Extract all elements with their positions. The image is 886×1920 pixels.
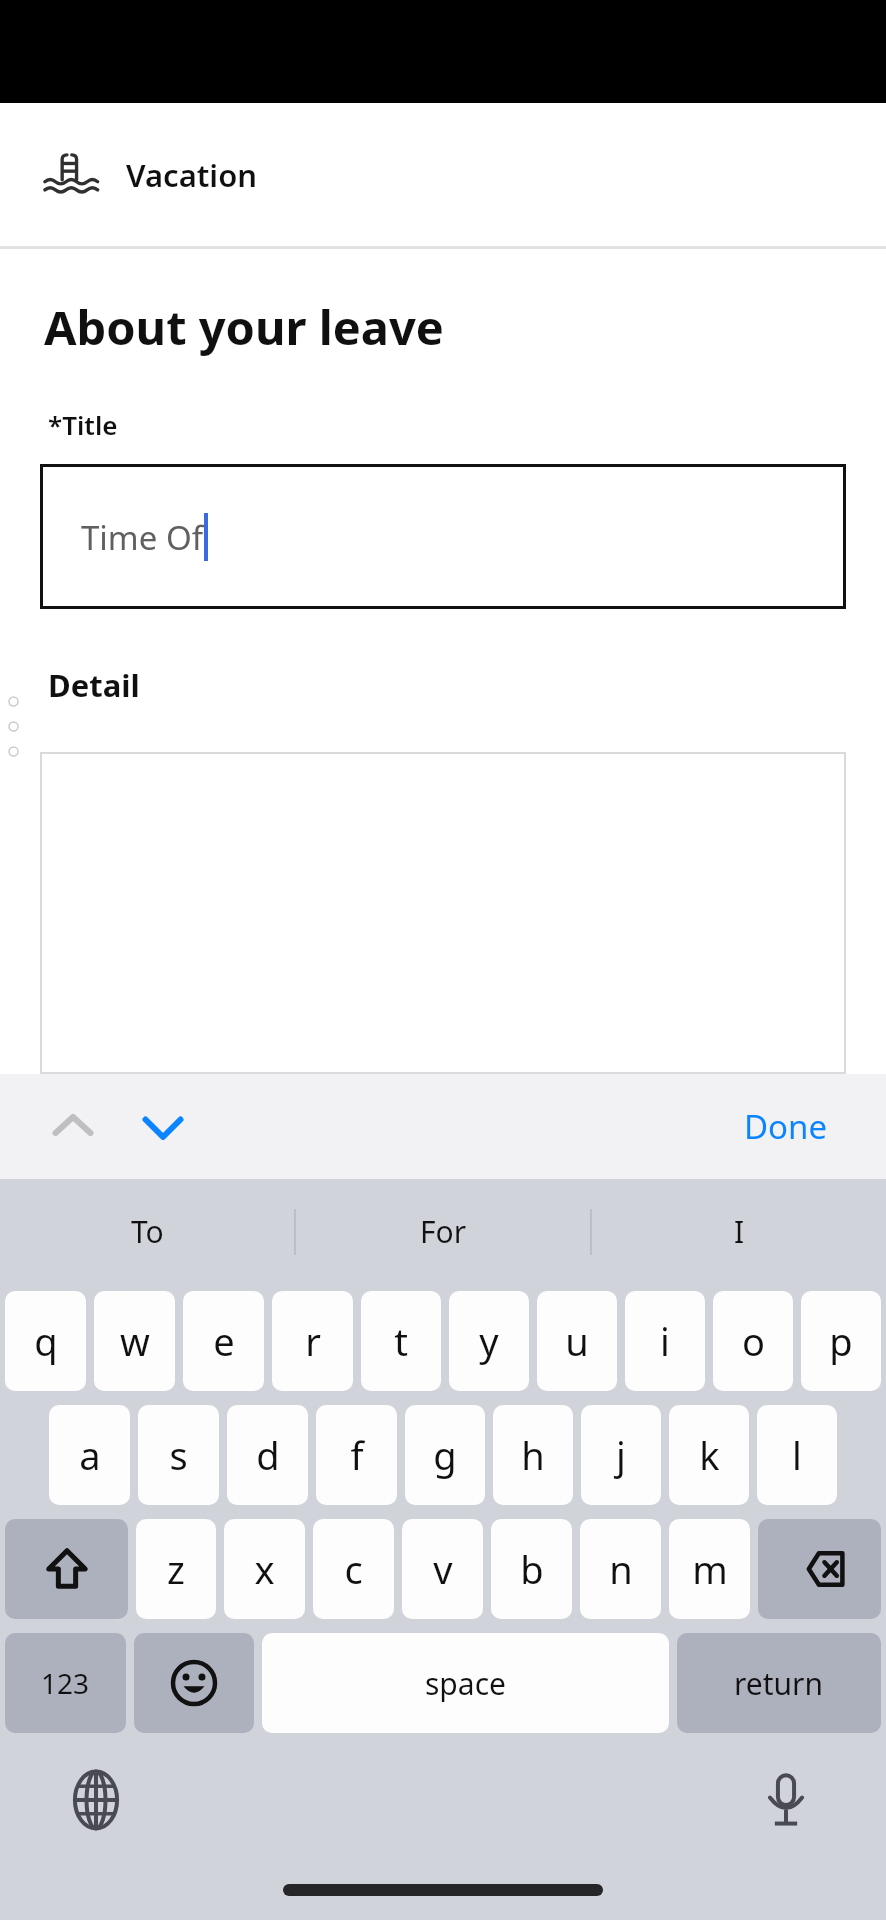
button[interactable]: Next field [130, 1094, 196, 1160]
button[interactable]: m [669, 1519, 750, 1619]
button[interactable]: w [94, 1291, 175, 1391]
button[interactable]: o [713, 1291, 793, 1391]
staticText: Time Of [81, 515, 204, 560]
staticText: a [79, 1429, 101, 1481]
staticText: z [167, 1543, 185, 1595]
staticText: d [256, 1429, 280, 1481]
staticText: h [521, 1429, 545, 1481]
button[interactable]: i [625, 1291, 705, 1391]
staticText: o [742, 1315, 765, 1367]
button[interactable]: u [537, 1291, 617, 1391]
staticText: 123 [41, 1664, 90, 1702]
button[interactable]: Backspace [758, 1519, 881, 1619]
button[interactable]: y [449, 1291, 529, 1391]
button[interactable]: c [313, 1519, 394, 1619]
button[interactable]: Dictate [748, 1762, 824, 1838]
button[interactable]: t [361, 1291, 441, 1391]
staticText: f [350, 1429, 364, 1481]
button[interactable]: j [581, 1405, 661, 1505]
button[interactable]: Done [714, 1088, 858, 1165]
staticText: m [692, 1543, 728, 1595]
button[interactable]: r [272, 1291, 353, 1391]
button[interactable]: q [5, 1291, 86, 1391]
staticText: g [433, 1429, 457, 1481]
staticText: e [213, 1315, 235, 1367]
button[interactable]: Shift [5, 1519, 128, 1619]
staticText: Done [744, 1104, 828, 1149]
button[interactable]: Vacation [0, 103, 886, 246]
button[interactable]: a [49, 1405, 130, 1505]
staticText: Vacation [126, 154, 258, 196]
staticText: u [565, 1315, 589, 1367]
staticText: l [792, 1429, 802, 1481]
staticText: w [120, 1315, 150, 1367]
button[interactable]: n [580, 1519, 661, 1619]
staticText: q [34, 1315, 58, 1367]
button[interactable]: g [405, 1405, 485, 1505]
button[interactable]: v [402, 1519, 483, 1619]
staticText: space [425, 1663, 506, 1704]
staticText: Detail [48, 664, 140, 706]
staticText: About your leave [44, 295, 444, 359]
button[interactable]: Time Of [40, 464, 846, 609]
button[interactable]: h [493, 1405, 573, 1505]
button[interactable]: Emoji [134, 1633, 254, 1733]
staticText: r [305, 1315, 321, 1367]
button[interactable]: For [296, 1179, 590, 1284]
button[interactable]: To [0, 1179, 294, 1284]
staticText: v [433, 1543, 453, 1595]
staticText: i [660, 1315, 670, 1367]
button[interactable]: b [491, 1519, 572, 1619]
button[interactable] [40, 752, 846, 1074]
staticText: return [734, 1663, 824, 1704]
button[interactable]: f [316, 1405, 397, 1505]
button[interactable]: k [669, 1405, 749, 1505]
staticText: s [169, 1429, 188, 1481]
staticText: For [420, 1211, 467, 1252]
button[interactable]: space [262, 1633, 669, 1733]
staticText: *Title [48, 407, 118, 442]
staticText: x [254, 1543, 275, 1595]
button[interactable]: I [592, 1179, 886, 1284]
button[interactable]: s [138, 1405, 219, 1505]
button[interactable]: e [183, 1291, 264, 1391]
staticText: y [479, 1315, 499, 1367]
button[interactable]: Previous field [40, 1094, 106, 1160]
button[interactable]: 123 [5, 1633, 126, 1733]
staticText: b [520, 1543, 544, 1595]
staticText: c [344, 1543, 363, 1595]
staticText: t [394, 1315, 408, 1367]
button[interactable]: return [677, 1633, 881, 1733]
button[interactable]: x [224, 1519, 305, 1619]
button[interactable]: p [801, 1291, 881, 1391]
staticText: p [829, 1315, 853, 1367]
staticText: j [616, 1429, 626, 1481]
button[interactable]: d [227, 1405, 308, 1505]
button[interactable]: z [136, 1519, 216, 1619]
staticText: n [609, 1543, 633, 1595]
staticText: k [699, 1429, 720, 1481]
button[interactable]: Change keyboard [58, 1762, 134, 1838]
button[interactable]: l [757, 1405, 837, 1505]
staticText: To [131, 1211, 164, 1252]
staticText: I [734, 1211, 745, 1252]
